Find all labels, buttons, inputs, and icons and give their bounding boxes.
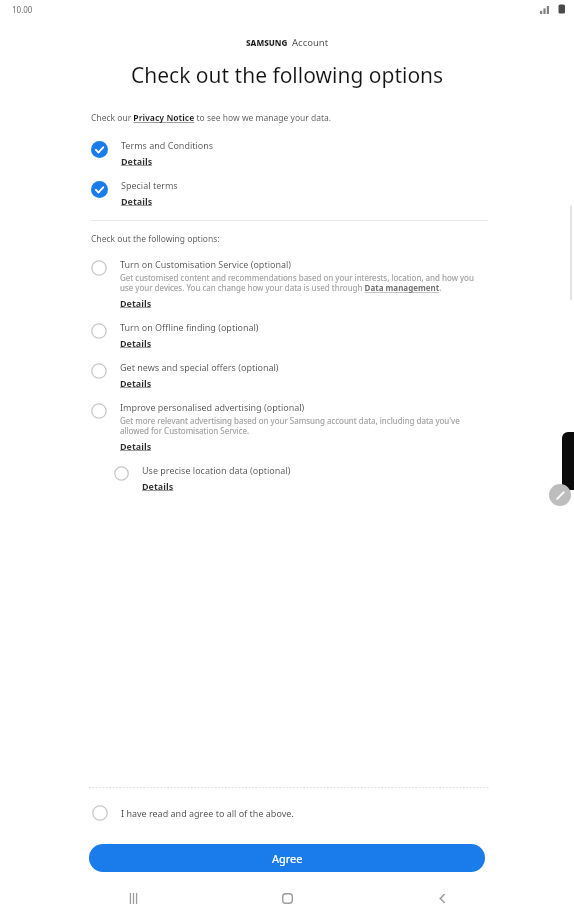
staticText: SAMSUNG [246,37,288,48]
button[interactable]: Unchecked option [91,321,488,349]
staticText: Use precise location data (optional) [142,464,291,476]
button[interactable]: Edge panel handle [562,432,574,490]
button[interactable]: Unchecked option [91,258,488,309]
button[interactable]: Recents [111,877,155,919]
staticText: Get news and special offers (optional) [120,361,279,373]
button[interactable]: Unchecked option [92,805,108,821]
staticText: Get more relevant advertising based on y… [120,415,488,437]
staticText: Details [142,480,174,492]
staticText: 10.00 [12,4,33,15]
staticText: Turn on Customisation Service (optional) [120,258,292,270]
staticText: Details [120,297,152,309]
button[interactable]: Home [265,877,309,919]
staticText: Check out the following options [131,61,444,90]
staticText: Get customised content and recommendatio… [120,272,488,294]
button[interactable]: Checked, agreed [91,141,108,158]
staticText: Details [121,195,153,207]
button[interactable]: Unchecked option [114,464,488,492]
staticText: Terms and Conditions [121,139,214,151]
button[interactable]: Unchecked option [91,401,488,452]
button[interactable]: Unchecked option [91,323,107,339]
button[interactable]: Unchecked option [91,361,488,389]
button[interactable]: Details [120,377,152,389]
button[interactable]: Edit [549,484,571,506]
staticText: Special terms [121,179,178,191]
staticText: Check our Privacy Notice to see how we m… [91,112,332,124]
button[interactable]: Unchecked option [92,805,488,821]
button[interactable]: Checked, agreed [91,179,488,207]
staticText: Details [120,440,152,452]
button[interactable]: Checked, agreed [91,181,108,198]
staticText: Account [292,36,329,49]
button[interactable]: Unchecked option [91,403,107,419]
staticText: Improve personalised advertising (option… [120,401,305,413]
staticText: Turn on Offline finding (optional) [120,321,259,333]
button[interactable]: Unchecked option [114,466,129,481]
button[interactable]: Details [142,480,174,492]
button[interactable]: Details [121,155,153,167]
staticText: I have read and agree to all of the abov… [121,807,294,819]
button[interactable]: Details [120,297,152,309]
staticText: Check out the following options: [91,233,220,245]
button[interactable]: Checked, agreed [91,139,488,167]
staticText: Details [121,155,153,167]
staticText: Details [120,377,152,389]
button[interactable]: Unchecked option [91,260,107,276]
button[interactable]: Details [120,440,152,452]
staticText: Details [120,337,152,349]
button[interactable]: Back [420,877,464,919]
staticText: Agree [272,851,303,866]
button[interactable]: Details [120,337,152,349]
button[interactable]: Agree [89,844,485,872]
button[interactable]: Details [121,195,153,207]
button[interactable]: Unchecked option [91,363,107,379]
